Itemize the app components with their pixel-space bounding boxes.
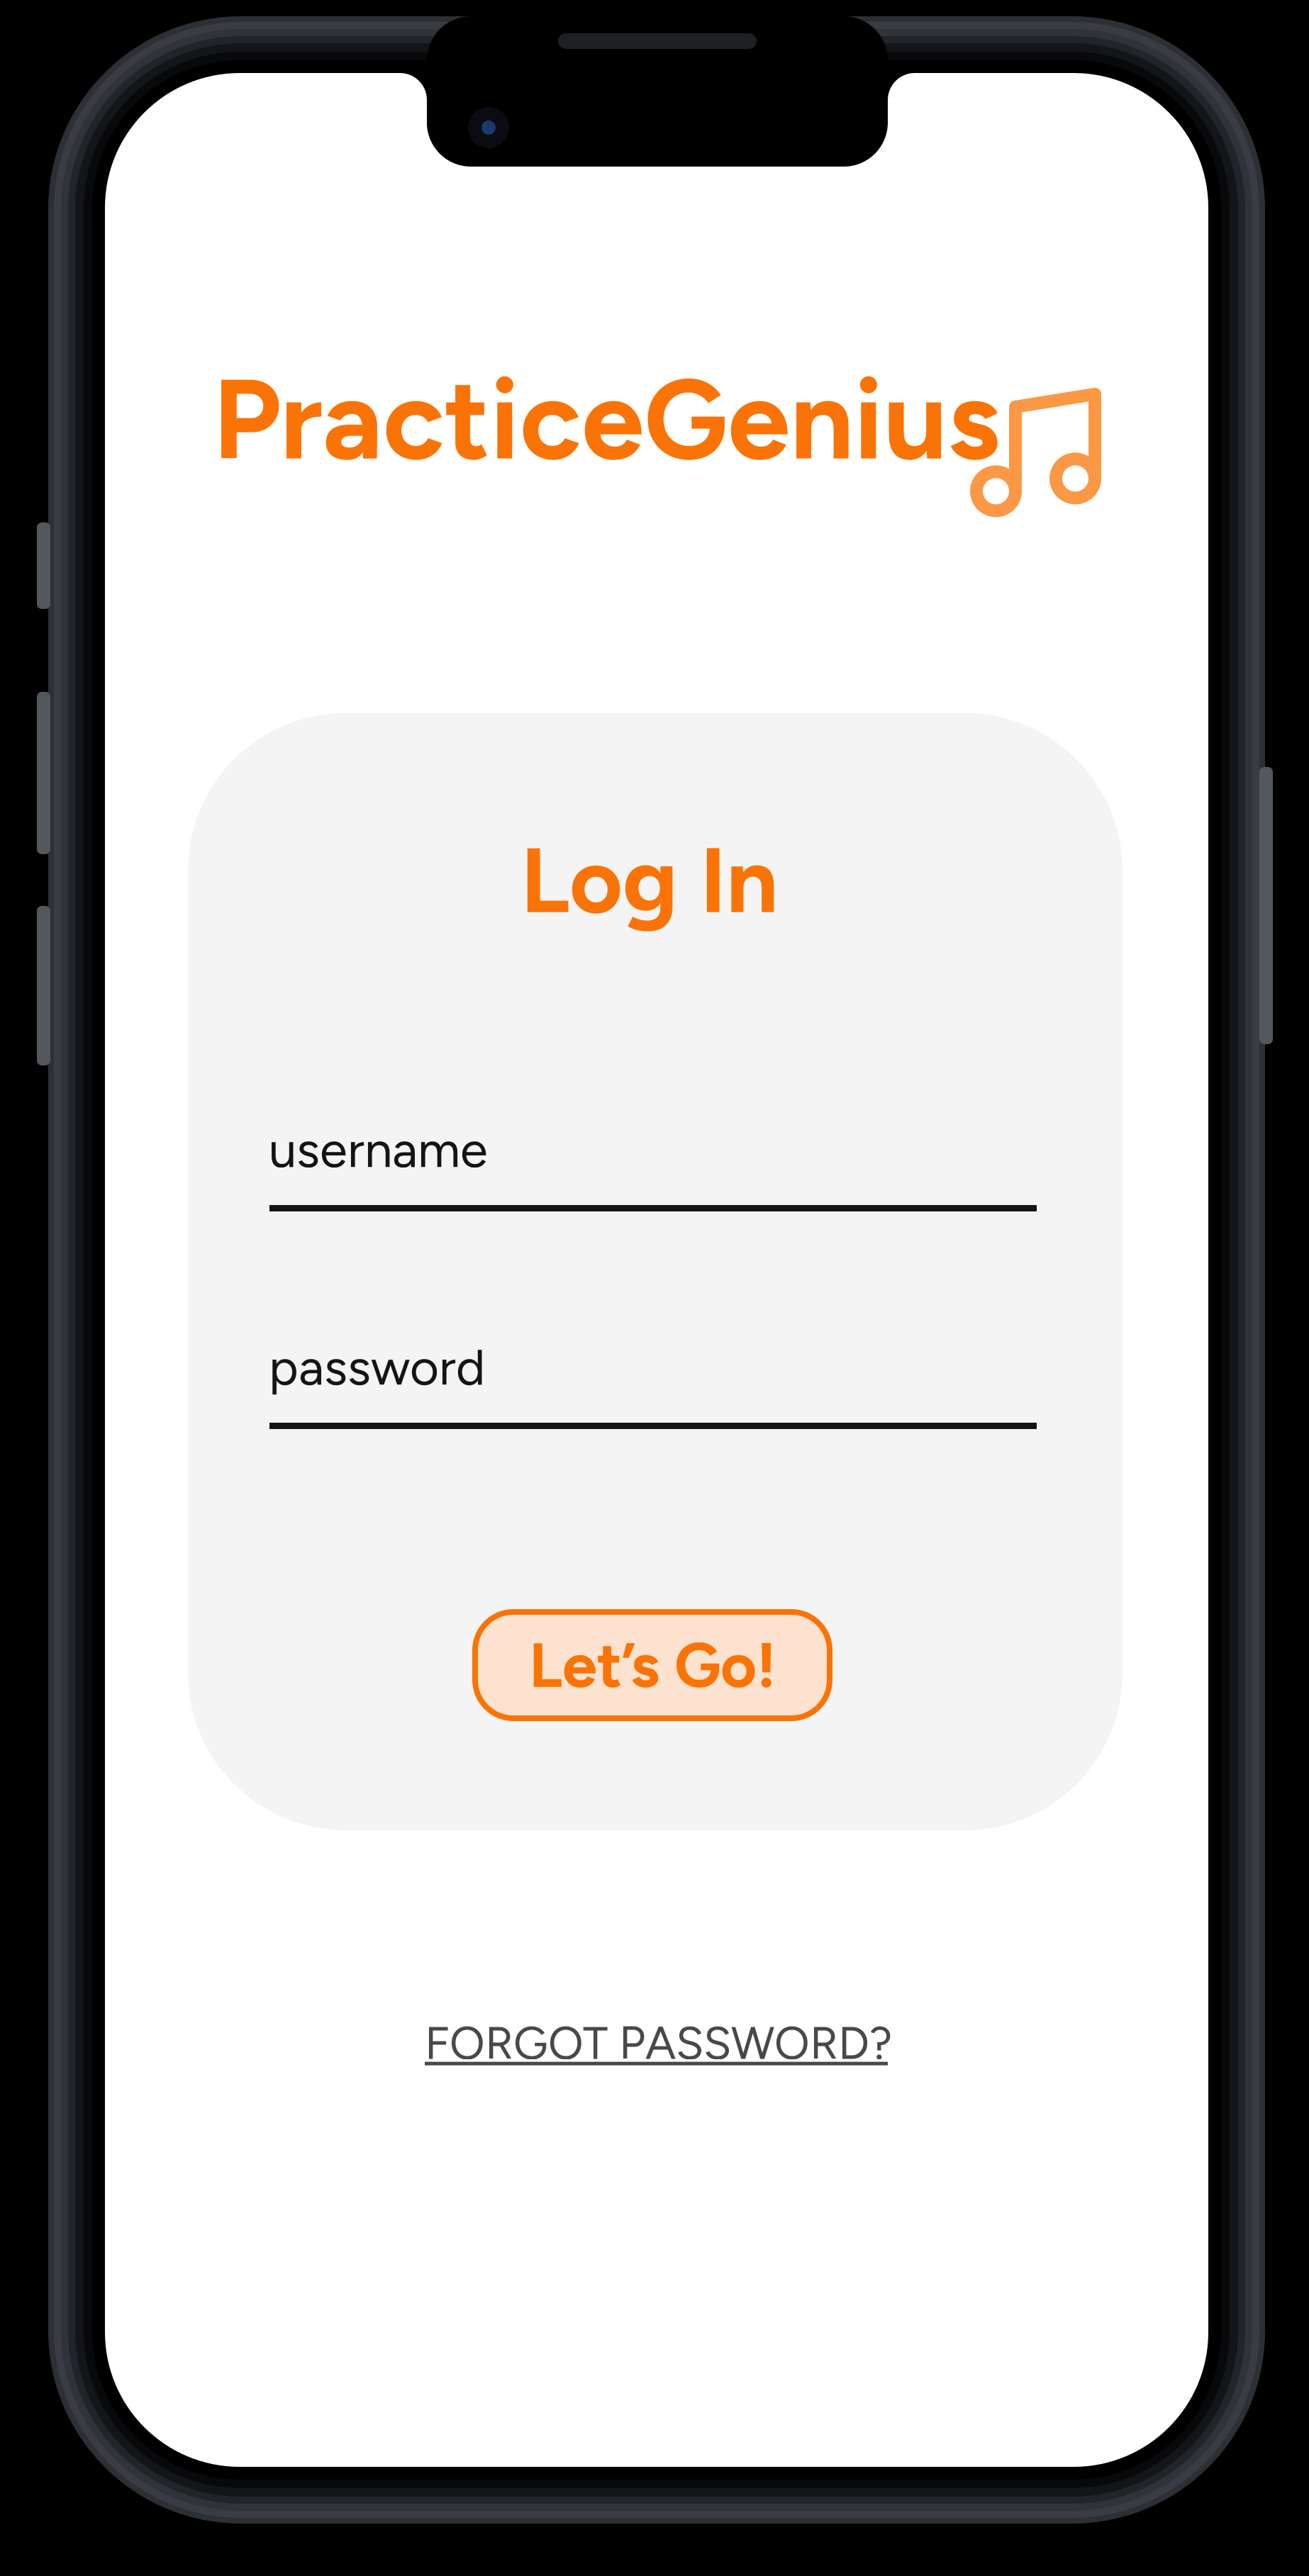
staticText: password: [269, 1337, 485, 1397]
staticText: Let’s Go!: [529, 1628, 776, 1703]
button[interactable]: FORGOT PASSWORD?: [425, 2023, 964, 2070]
staticText: username: [269, 1119, 488, 1179]
staticText: PracticeGenius: [213, 352, 1000, 487]
staticText: Log In: [520, 825, 778, 935]
staticText: FORGOT PASSWORD?: [425, 2016, 892, 2070]
button[interactable]: Let’s Go!: [475, 1612, 830, 1718]
